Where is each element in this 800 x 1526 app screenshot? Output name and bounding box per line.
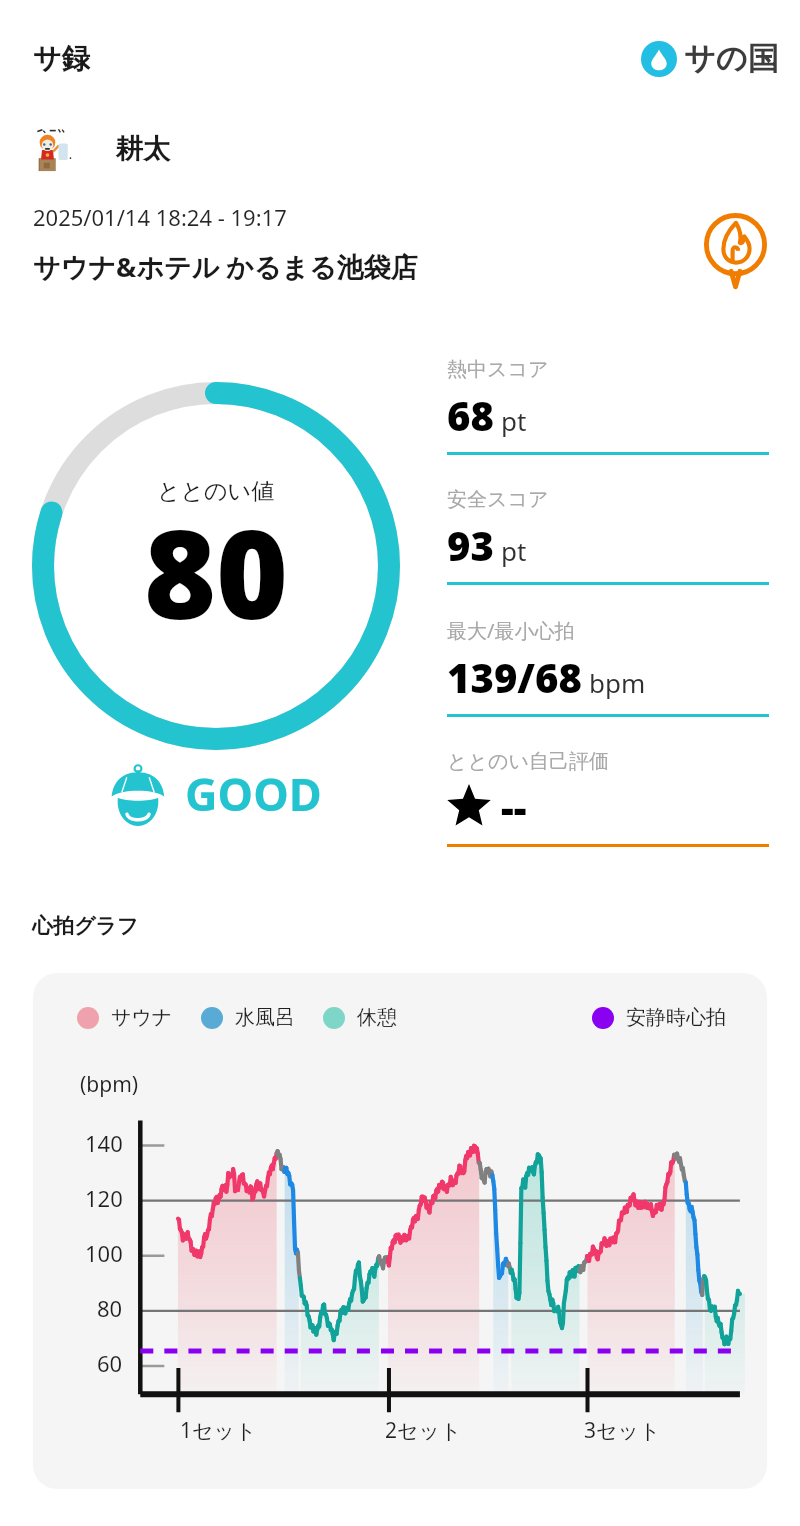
button[interactable]: 安静時心拍 bbox=[592, 1005, 726, 1030]
button[interactable]: 熱中スコア bbox=[447, 357, 769, 455]
staticText: サウナ bbox=[111, 1005, 173, 1030]
button[interactable]: 最大/最小心拍 bbox=[447, 617, 769, 717]
staticText: 最大/最小心拍 bbox=[447, 617, 575, 644]
staticText: ととのい自己評価 bbox=[447, 749, 609, 774]
staticText: 80 bbox=[97, 1293, 123, 1323]
button[interactable]: 水風呂 bbox=[201, 1005, 295, 1030]
button[interactable]: サウナ bbox=[77, 1005, 173, 1030]
button[interactable]: サウナ&ホテル かるまる池袋店 bbox=[33, 248, 418, 285]
button[interactable]: サウナ情報 bbox=[687, 200, 784, 297]
staticText: -- bbox=[501, 780, 527, 834]
staticText: bpm bbox=[589, 665, 646, 700]
staticText: 80 bbox=[144, 488, 289, 656]
button[interactable]: 安全スコア bbox=[447, 487, 769, 585]
staticText: 熱中スコア bbox=[447, 357, 549, 382]
staticText: 安全スコア bbox=[447, 487, 549, 512]
staticText: 68 bbox=[447, 388, 494, 442]
staticText: (bpm) bbox=[80, 1070, 139, 1099]
staticText: ととのい値 bbox=[157, 477, 275, 506]
button[interactable]: 耕太 bbox=[30, 126, 800, 172]
staticText: 水風呂 bbox=[235, 1005, 295, 1030]
staticText: 93 bbox=[447, 518, 494, 572]
staticText: サの国 bbox=[684, 39, 779, 78]
staticText: pt bbox=[501, 403, 527, 438]
staticText: 140 bbox=[85, 1128, 123, 1158]
staticText: 2025/01/14 18:24 - 19:17 bbox=[33, 202, 287, 232]
button[interactable]: ととのい自己評価 bbox=[447, 749, 769, 847]
staticText: 60 bbox=[97, 1348, 123, 1378]
button[interactable]: 休憩 bbox=[323, 1005, 397, 1030]
staticText: 2セット bbox=[385, 1416, 462, 1445]
staticText: 休憩 bbox=[357, 1005, 397, 1030]
staticText: 3セット bbox=[584, 1416, 661, 1445]
staticText: 100 bbox=[85, 1238, 123, 1268]
button[interactable]: GOOD bbox=[110, 764, 322, 826]
button[interactable]: サの国 bbox=[641, 39, 772, 78]
staticText: 耕太 bbox=[116, 132, 170, 166]
staticText: 安静時心拍 bbox=[626, 1005, 726, 1030]
staticText: pt bbox=[501, 533, 527, 568]
staticText: GOOD bbox=[185, 763, 322, 824]
button[interactable]: サ録 bbox=[33, 41, 90, 76]
staticText: 1セット bbox=[180, 1416, 257, 1445]
staticText: 心拍グラフ bbox=[32, 913, 139, 939]
staticText: 120 bbox=[85, 1183, 123, 1213]
staticText: 139/68 bbox=[447, 650, 582, 704]
